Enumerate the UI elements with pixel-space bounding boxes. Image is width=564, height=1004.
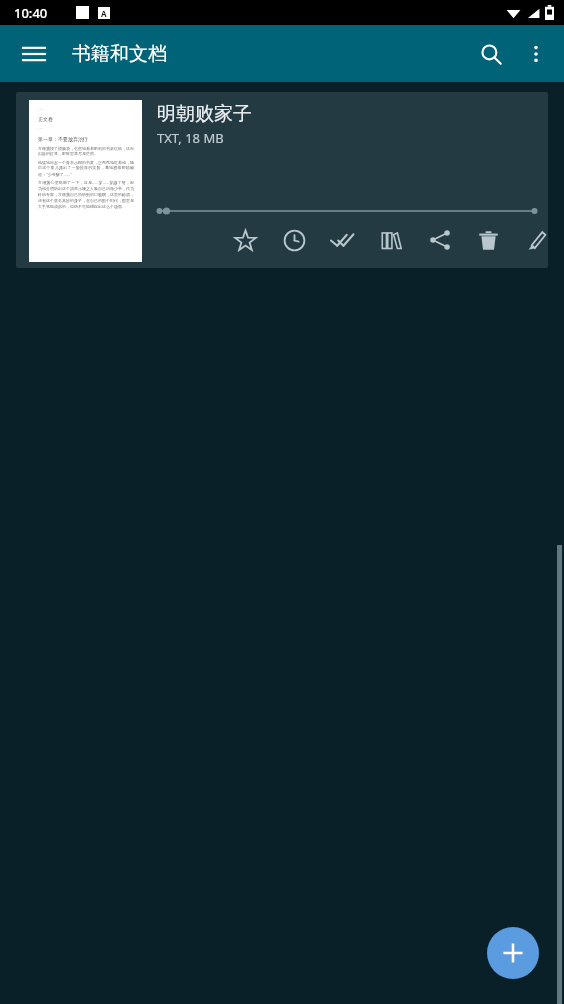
- staticText: 他猛地站起一个青衣小帽的书童，正死死地盯着他，随后这个童儿露出了一脸惊喜的笑脸，…: [38, 160, 134, 177]
- staticText: 方继藩心里咯噔了一下，这是……穿……穿越了呀，因为他分明听出这个清亮小嗓之人唤自…: [38, 180, 134, 210]
- staticText: A: [101, 8, 107, 19]
- button[interactable]: Favorite: [226, 221, 264, 259]
- button[interactable]: Recent: [275, 221, 313, 259]
- staticText: 10:40: [14, 4, 48, 22]
- button[interactable]: Delete: [469, 221, 507, 259]
- button[interactable]: Edit: [518, 221, 548, 259]
- staticText: 第一章：不要放弃治疗: [38, 136, 88, 142]
- button[interactable]: Share: [421, 221, 459, 259]
- staticText: 方继藩摸了摸脑袋，乞然地看着眼前的书桌红烛，这光闪烁的灯笼，眼眸里竟尽是茫然。: [38, 146, 134, 157]
- staticText: · · ·: [38, 107, 44, 112]
- staticText: TXT, 18 MB: [157, 129, 224, 147]
- button[interactable]: Mark as read: [323, 221, 361, 259]
- button[interactable]: More options: [514, 32, 558, 76]
- button[interactable]: · · ·: [16, 92, 548, 268]
- staticText: 书籍和文档: [72, 42, 167, 66]
- staticText: 正文卷: [38, 116, 53, 122]
- staticText: · · ·: [38, 126, 44, 131]
- button[interactable]: Add: [487, 927, 539, 979]
- button[interactable]: Search: [468, 31, 514, 77]
- button[interactable]: Bookshelf: [372, 221, 410, 259]
- staticText: 明朝败家子: [157, 102, 252, 126]
- button[interactable]: Open navigation menu: [12, 32, 56, 76]
